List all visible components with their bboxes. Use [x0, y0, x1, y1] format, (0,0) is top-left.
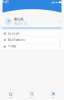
staticText: Search — [29, 96, 35, 98]
staticText: Notifications — [8, 38, 25, 42]
button[interactable]: Privacy — [0, 43, 64, 49]
staticText: Me — [52, 96, 54, 98]
staticText: 9:41 — [2, 0, 9, 4]
button[interactable]: Alex K. — [0, 16, 64, 26]
button[interactable]: Search — [21, 92, 43, 98]
staticText: Apple ID — [14, 22, 27, 25]
button[interactable]: Home — [0, 92, 21, 98]
staticText: Home — [9, 96, 13, 98]
staticText: Alex K. — [14, 18, 24, 21]
staticText: Privacy — [8, 44, 16, 48]
button[interactable]: Me — [43, 92, 64, 98]
button[interactable]: Notifications — [0, 37, 64, 43]
staticText: General — [8, 32, 19, 35]
button[interactable]: General — [0, 31, 64, 37]
